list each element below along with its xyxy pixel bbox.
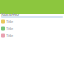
staticText: Title [6,33,13,38]
staticText: Title [6,26,13,31]
staticText: Nearby [1,11,19,19]
staticText: Title [6,19,13,24]
